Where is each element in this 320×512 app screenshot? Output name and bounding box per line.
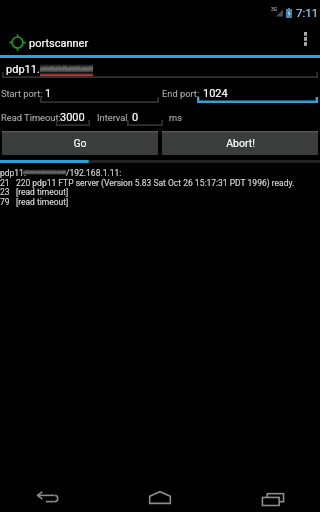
staticText: 3000 [60, 111, 85, 124]
staticText: pdp11. [0, 168, 27, 178]
staticText: Start port: [1, 88, 43, 99]
staticText: Read Timeout: [1, 112, 61, 123]
button[interactable]: Recent apps [238, 474, 308, 512]
button[interactable]: Back [13, 474, 83, 512]
button[interactable]: Abort! [162, 131, 318, 155]
staticText: Go [73, 137, 87, 149]
button[interactable]: More options [290, 22, 320, 55]
staticText: /192.168.1.11: [66, 168, 122, 178]
staticText: Interval [97, 112, 128, 123]
staticText: 0 [132, 111, 139, 124]
staticText: portscanner [29, 37, 89, 50]
staticText: 79 [read timeout] [0, 197, 69, 207]
staticText: pdp11. [6, 63, 40, 76]
button[interactable]: Home [125, 474, 195, 512]
staticText: 7:11 [296, 6, 319, 19]
staticText: ms [169, 112, 182, 123]
staticText: 1 [45, 87, 52, 100]
staticText: 23 [read timeout] [0, 187, 69, 197]
button[interactable]: Go [2, 131, 158, 155]
staticText: 1024 [203, 87, 228, 100]
staticText: 21 220 pdp11 FTP server (Version 5.83 Sa… [0, 178, 295, 188]
staticText: Abort! [226, 137, 255, 149]
staticText: 3G [271, 6, 278, 12]
staticText: End port: [162, 88, 200, 99]
